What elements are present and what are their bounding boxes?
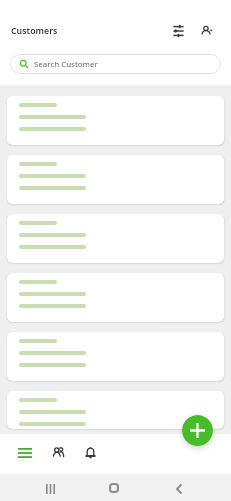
button[interactable]: [7, 96, 224, 145]
button[interactable]: [7, 273, 224, 322]
button[interactable]: Add customer: [194, 19, 218, 43]
button[interactable]: Recents: [39, 478, 61, 500]
button[interactable]: People: [41, 436, 74, 469]
button[interactable]: [7, 155, 224, 204]
button[interactable]: Home: [103, 477, 125, 499]
button[interactable]: Search Customer: [10, 54, 221, 74]
button[interactable]: [7, 332, 224, 381]
button[interactable]: Notifications: [74, 436, 107, 469]
button[interactable]: [7, 391, 224, 429]
staticText: Customers: [11, 25, 58, 37]
button[interactable]: Add: [182, 415, 213, 446]
button[interactable]: Filter: [166, 19, 190, 43]
button[interactable]: Menu: [8, 436, 41, 469]
button[interactable]: Back: [168, 478, 190, 500]
button[interactable]: [7, 214, 224, 263]
staticText: Search Customer: [34, 59, 98, 70]
